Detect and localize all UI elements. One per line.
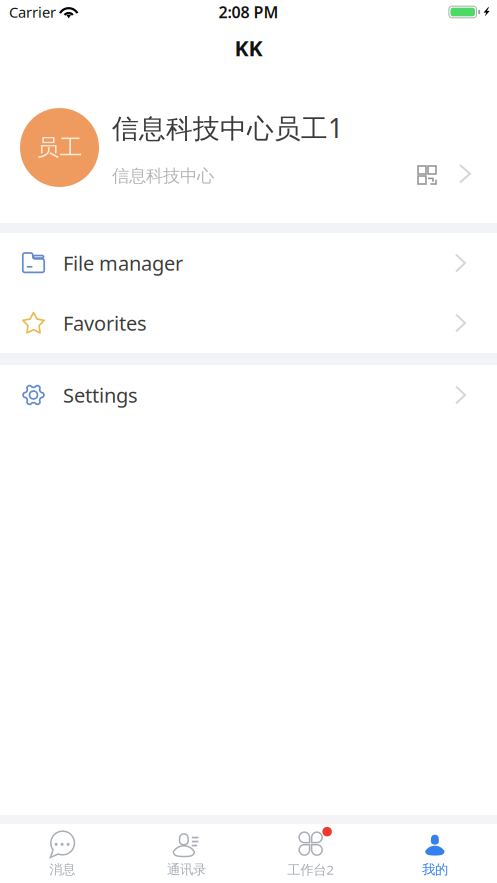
staticText: 我的	[422, 861, 448, 878]
staticText: 信息科技中心	[112, 165, 214, 187]
staticText: 信息科技中心员工1	[112, 110, 343, 145]
button[interactable]: 工作台2	[248, 821, 373, 883]
button[interactable]: File manager	[0, 233, 497, 293]
button[interactable]: 消息	[0, 821, 124, 883]
staticText: Carrier	[9, 2, 56, 22]
staticText: 员工	[36, 134, 82, 161]
button[interactable]: Favorites	[0, 293, 497, 353]
staticText: 2:08 PM	[218, 1, 278, 23]
button[interactable]: 通讯录	[124, 821, 248, 883]
staticText: File manager	[63, 250, 183, 276]
button[interactable]: 我的	[373, 821, 497, 883]
button[interactable]: 员工	[0, 72, 497, 223]
staticText: 通讯录	[167, 861, 206, 878]
staticText: KK	[234, 34, 262, 62]
staticText: 消息	[49, 861, 75, 878]
staticText: 工作台2	[287, 861, 334, 878]
button[interactable]: Settings	[0, 365, 497, 425]
staticText: Favorites	[63, 310, 147, 336]
staticText: Settings	[63, 382, 138, 408]
